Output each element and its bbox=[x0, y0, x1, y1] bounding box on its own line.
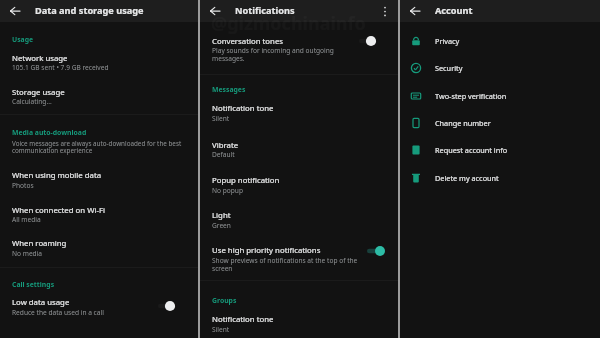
staticText: Groups bbox=[212, 296, 237, 305]
staticText: @gizmochinainfo bbox=[211, 11, 366, 36]
staticText: Data and storage usage bbox=[35, 4, 144, 17]
staticText: Default bbox=[212, 150, 235, 159]
staticText: Silent bbox=[212, 325, 230, 334]
staticText: Conversation tones bbox=[212, 36, 284, 47]
staticText: Usage bbox=[12, 35, 34, 44]
staticText: 105.1 GB sent • 7.9 GB received bbox=[12, 63, 109, 72]
button[interactable]: Network usage bbox=[0, 48, 198, 74]
staticText: When connected on Wi-Fi bbox=[12, 205, 105, 216]
staticText: All media bbox=[12, 215, 41, 224]
staticText: Notification tone bbox=[212, 103, 274, 114]
staticText: Two-step verification bbox=[435, 91, 507, 101]
staticText: Call settings bbox=[12, 280, 55, 289]
button[interactable]: Back bbox=[204, 0, 226, 22]
button[interactable]: Delete my account bbox=[400, 164, 600, 191]
button[interactable]: When using mobile data bbox=[0, 165, 198, 191]
staticText: Use high priority notifications bbox=[212, 245, 321, 256]
staticText: Request account info bbox=[435, 145, 508, 155]
button[interactable]: Notification tone bbox=[200, 99, 398, 125]
staticText: When roaming bbox=[12, 238, 67, 249]
button[interactable]: Privacy bbox=[400, 27, 600, 54]
button[interactable]: When roaming bbox=[0, 233, 198, 259]
staticText: When using mobile data bbox=[12, 170, 102, 181]
staticText: Vibrate bbox=[212, 140, 239, 151]
button[interactable]: Change number bbox=[400, 109, 600, 136]
button[interactable]: Low data usage bbox=[0, 293, 198, 319]
staticText: Account bbox=[435, 4, 473, 17]
button[interactable]: Toggle off bbox=[357, 32, 385, 50]
staticText: Storage usage bbox=[12, 87, 65, 98]
button[interactable]: Popup notification bbox=[200, 170, 398, 196]
staticText: Green bbox=[212, 221, 231, 230]
button[interactable]: Security bbox=[400, 54, 600, 81]
button[interactable]: Two-step verification bbox=[400, 82, 600, 109]
staticText: Calculating... bbox=[12, 97, 52, 106]
staticText: Delete my account bbox=[435, 173, 499, 183]
staticText: Photos bbox=[12, 181, 34, 190]
staticText: Play sounds for incoming and outgoing me… bbox=[212, 46, 334, 63]
staticText: No popup bbox=[212, 186, 243, 195]
button[interactable]: More options bbox=[376, 0, 394, 22]
staticText: Notification tone bbox=[212, 314, 274, 325]
staticText: Notifications bbox=[235, 4, 295, 17]
button[interactable]: Request account info bbox=[400, 136, 600, 163]
staticText: Privacy bbox=[435, 36, 460, 46]
staticText: Low data usage bbox=[12, 297, 70, 308]
staticText: Silent bbox=[212, 114, 230, 123]
staticText: Network usage bbox=[12, 53, 68, 64]
staticText: No media bbox=[12, 249, 43, 258]
button[interactable]: Light bbox=[200, 205, 398, 231]
button[interactable]: Back bbox=[404, 0, 426, 22]
button[interactable]: Toggle off bbox=[156, 297, 184, 315]
staticText: Popup notification bbox=[212, 175, 280, 186]
staticText: Show previews of notifications at the to… bbox=[212, 256, 358, 273]
staticText: Voice messages are always auto-downloade… bbox=[12, 139, 182, 155]
button[interactable]: Notification tone bbox=[200, 310, 398, 336]
staticText: Change number bbox=[435, 118, 491, 128]
staticText: Media auto-download bbox=[12, 128, 87, 137]
button[interactable]: Storage usage bbox=[0, 82, 198, 108]
button[interactable]: When connected on Wi-Fi bbox=[0, 200, 198, 226]
staticText: Light bbox=[212, 210, 231, 221]
button[interactable]: Back bbox=[4, 0, 26, 22]
staticText: Reduce the data used in a call bbox=[12, 308, 104, 317]
button[interactable]: Vibrate bbox=[200, 135, 398, 161]
button[interactable]: Toggle on bbox=[366, 242, 394, 260]
staticText: Messages bbox=[212, 85, 246, 94]
button[interactable]: Conversation tones bbox=[200, 31, 398, 65]
staticText: Security bbox=[435, 63, 463, 73]
button[interactable]: Use high priority notifications bbox=[200, 241, 398, 275]
